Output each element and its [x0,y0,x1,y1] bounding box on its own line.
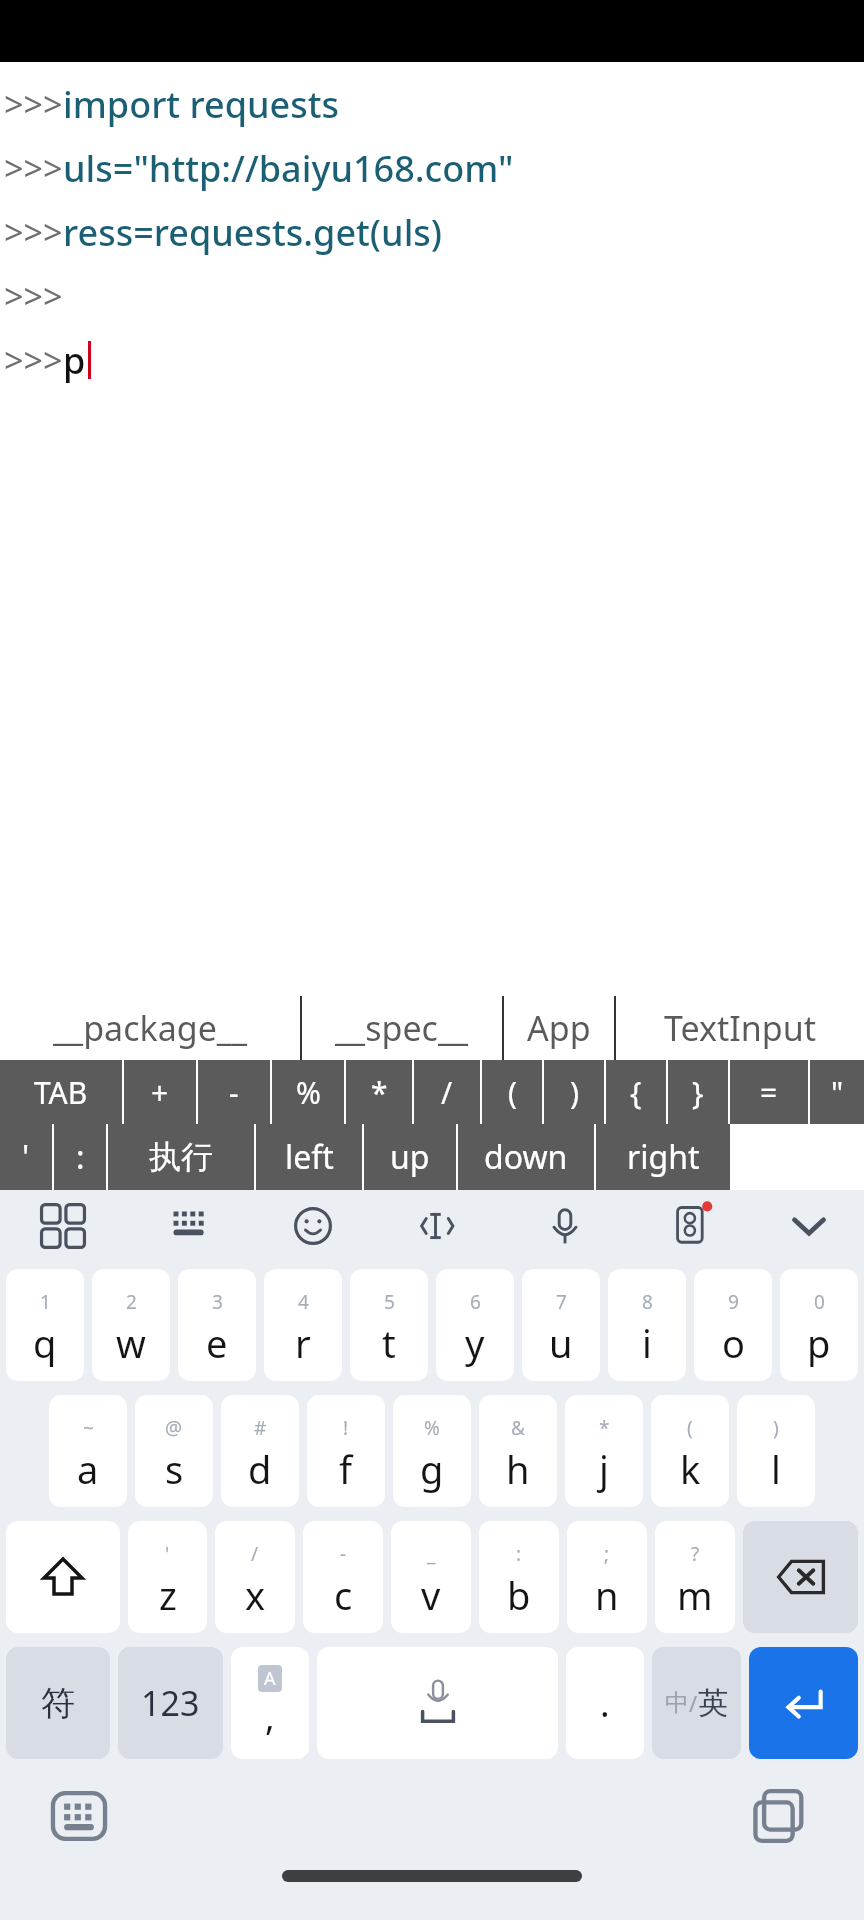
button[interactable]: Recent apps [748,1785,810,1847]
button[interactable]: 9 [694,1269,772,1381]
button[interactable]: Emoji [250,1190,376,1262]
button[interactable]: ( [651,1395,729,1507]
button[interactable]: 7 [522,1269,600,1381]
button[interactable]: Hide keyboard [754,1190,864,1262]
staticText: 符 [41,1682,75,1725]
button[interactable]: 1 [6,1269,84,1381]
staticText: - [229,1072,239,1113]
staticText: 8 [642,1289,653,1315]
staticText: e [206,1317,228,1369]
staticText: ~ [83,1415,94,1441]
button[interactable]: * [565,1395,643,1507]
staticText: 9 [728,1289,739,1315]
button[interactable]: & [479,1395,557,1507]
staticText: o [722,1317,745,1369]
button[interactable]: ~ [49,1395,127,1507]
button[interactable]: TAB [0,1060,122,1124]
staticText: s [165,1443,184,1495]
staticText: x [245,1569,266,1621]
staticText: up [390,1135,430,1179]
staticText: ress=requests.get(uls) [63,208,443,257]
button[interactable]: / [215,1521,295,1633]
staticText: ! [343,1415,349,1441]
button[interactable]: + [124,1060,196,1124]
button[interactable]: % [272,1060,344,1124]
button[interactable]: 3 [178,1269,256,1381]
button[interactable]: left [256,1124,362,1190]
staticText: >>> [4,81,63,127]
button[interactable]: - [198,1060,270,1124]
button[interactable]: _ [391,1521,471,1633]
staticText: ) [570,1072,579,1113]
button[interactable]: 123 [118,1647,223,1759]
button[interactable]: - [303,1521,383,1633]
button[interactable]: ) [737,1395,815,1507]
button[interactable]: 2 [92,1269,170,1381]
staticText: { [630,1072,642,1113]
button[interactable]: Keyboard layout [125,1190,250,1262]
button[interactable]: / [414,1060,480,1124]
button[interactable]: ) [544,1060,604,1124]
button[interactable]: TextInput [616,996,864,1060]
staticText: 6 [470,1289,481,1315]
staticText: >>> [4,273,63,319]
button[interactable]: up [364,1124,456,1190]
button[interactable]: ' [0,1124,52,1190]
staticText: ? [691,1541,700,1567]
button[interactable]: 4 [264,1269,342,1381]
staticText: / [251,1541,259,1567]
button[interactable]: ! [307,1395,385,1507]
button[interactable]: App [504,996,614,1060]
button[interactable]: : [479,1521,559,1633]
button[interactable]: Voice input [502,1190,628,1262]
staticText: __package__ [53,1005,248,1051]
button[interactable]: 中 [652,1647,741,1759]
staticText: - [340,1541,347,1567]
staticText: 英 [698,1684,728,1722]
button[interactable]: % [393,1395,471,1507]
button[interactable]: Space [317,1647,558,1759]
staticText: _ [427,1541,436,1567]
button[interactable]: : [54,1124,106,1190]
button[interactable]: " [810,1060,864,1124]
button[interactable]: Switch keyboard [48,1785,110,1847]
button[interactable]: 5 [350,1269,428,1381]
button[interactable]: ? [655,1521,735,1633]
button[interactable]: Shift [6,1521,120,1633]
button[interactable]: down [458,1124,594,1190]
button[interactable]: 0 [780,1269,858,1381]
staticText: * [599,1415,610,1441]
button[interactable]: } [668,1060,728,1124]
button[interactable]: Backspace [743,1521,858,1633]
staticText: " [831,1072,844,1113]
button[interactable]: Apps [0,1190,125,1262]
button[interactable]: # [221,1395,299,1507]
button[interactable]: @ [135,1395,213,1507]
button[interactable]: 符 [6,1647,110,1759]
button[interactable]: ' [128,1521,207,1633]
button[interactable]: = [730,1060,808,1124]
button[interactable]: right [596,1124,730,1190]
button[interactable]: 执行 [108,1124,254,1190]
button[interactable]: A [231,1647,309,1759]
button[interactable]: __package__ [0,996,300,1060]
button[interactable]: Enter [749,1647,858,1759]
button[interactable]: Translate [663,1198,719,1254]
button[interactable]: 8 [608,1269,686,1381]
staticText: TextInput [664,1005,817,1051]
button[interactable]: ( [482,1060,542,1124]
button[interactable]: . [566,1647,644,1759]
staticText: w [116,1317,146,1369]
staticText: f [339,1443,353,1495]
staticText: + [151,1072,169,1113]
staticText: a [77,1443,99,1495]
staticText: v [421,1569,441,1621]
button[interactable]: ; [567,1521,647,1633]
button[interactable]: 6 [436,1269,514,1381]
staticText: l [771,1443,781,1495]
button[interactable]: __spec__ [302,996,502,1060]
staticText: 执行 [149,1137,213,1177]
button[interactable]: * [346,1060,412,1124]
button[interactable]: Text editing [376,1190,502,1262]
button[interactable]: { [606,1060,666,1124]
